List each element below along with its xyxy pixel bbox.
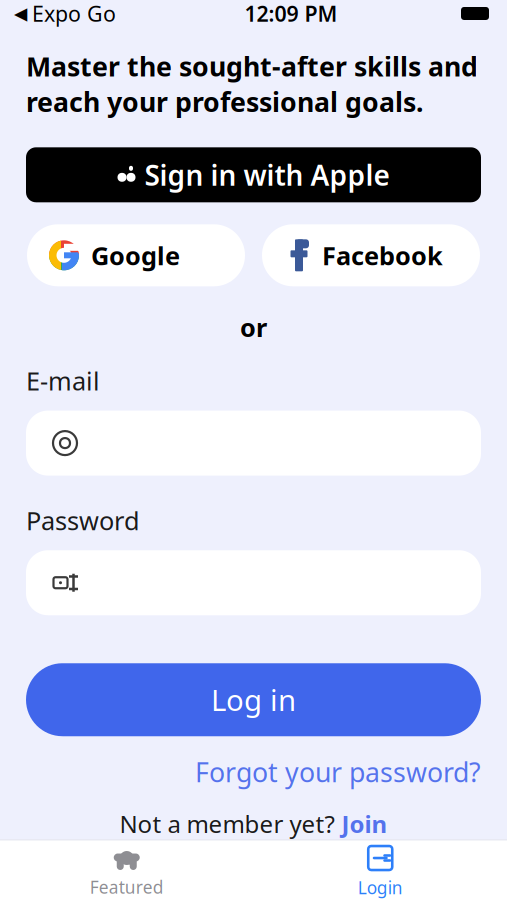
button[interactable]: Not a member yet? [119,808,387,839]
button[interactable]: Featured [0,837,253,900]
button[interactable] [26,550,481,615]
button[interactable]: Sign in with Apple [26,147,481,202]
staticText: Sign in with Apple [144,156,389,193]
staticText: Log in [211,680,296,719]
staticText: Join [341,808,387,839]
staticText: Master the sought-after skills and reach… [26,48,478,119]
staticText: Password [26,504,140,537]
staticText: or [240,310,267,344]
staticText: E-mail [26,364,100,397]
staticText: Featured [90,875,164,898]
button[interactable]: Forgot your password? [195,754,481,790]
button[interactable]: Google [27,224,245,286]
button[interactable]: Login [253,837,507,900]
staticText: Expo Go [32,0,116,28]
button[interactable] [26,411,481,476]
button[interactable]: Facebook [262,224,480,286]
staticText: 12:09 PM [244,0,337,28]
staticText: Not a member yet? [119,808,334,839]
staticText: Login [358,876,403,899]
staticText: Facebook [322,238,443,272]
staticText: Forgot your password? [195,754,481,790]
staticText: Google [91,238,180,272]
button[interactable]: Log in [26,663,481,736]
staticText: ◀ [14,4,27,23]
